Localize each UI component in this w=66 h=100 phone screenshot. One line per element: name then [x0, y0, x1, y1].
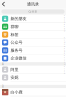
staticText: D — [64, 21, 65, 23]
button[interactable]: 白小鹿 — [0, 88, 66, 96]
staticText: B — [2, 85, 4, 88]
button[interactable]: 服务号 — [0, 47, 66, 54]
button[interactable]: Back — [0, 0, 7, 8]
button[interactable]: 阿里 — [0, 66, 66, 74]
staticText: 企业微信 — [10, 56, 26, 61]
staticText: 通讯录 — [27, 2, 39, 6]
staticText: G — [64, 28, 65, 30]
staticText: O — [64, 46, 65, 47]
staticText: R — [64, 52, 65, 54]
staticText: 群聊 — [10, 24, 18, 29]
staticText: 服务号 — [10, 48, 22, 53]
staticText: 白小鹿 — [10, 90, 22, 94]
button[interactable]: 群聊 — [0, 23, 66, 31]
staticText: F — [64, 26, 65, 27]
staticText: A — [2, 62, 4, 66]
staticText: B — [64, 17, 65, 19]
button[interactable]: Alphabet index — [63, 15, 66, 74]
staticText: 新的朋友 — [10, 16, 26, 21]
staticText: 标签 — [10, 32, 18, 37]
staticText: M — [64, 41, 65, 43]
staticText: # — [64, 72, 65, 74]
staticText: X — [64, 66, 65, 67]
button[interactable]: 企业微信 — [0, 54, 66, 62]
staticText: 公众号 — [10, 40, 22, 45]
staticText: Y — [64, 68, 65, 70]
button[interactable]: 搜索 — [0, 8, 66, 15]
button[interactable]: 安妮 — [0, 74, 66, 82]
staticText: Q — [64, 50, 65, 52]
button[interactable]: 公众号 — [0, 39, 66, 47]
staticText: T — [64, 57, 65, 59]
button[interactable]: 标签 — [0, 31, 66, 39]
staticText: K — [64, 37, 65, 39]
staticText: H — [64, 30, 65, 32]
staticText: P — [64, 48, 65, 50]
staticText: 搜索 — [32, 10, 38, 13]
staticText: 安妮 — [10, 75, 18, 80]
button[interactable]: 新的朋友 — [0, 15, 66, 23]
staticText: V — [64, 61, 65, 63]
staticText: 阿里 — [10, 67, 18, 72]
